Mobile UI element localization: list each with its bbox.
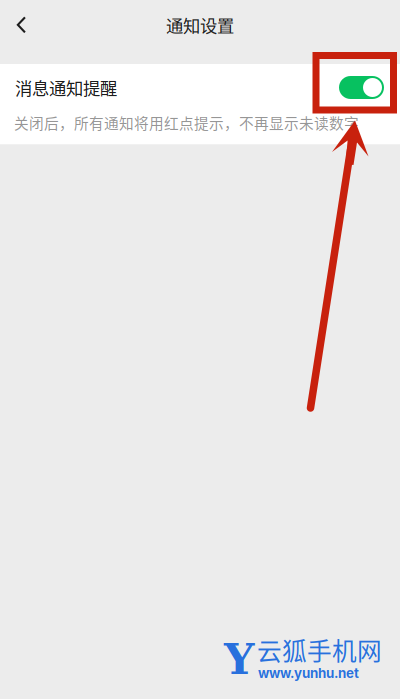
button[interactable]: 返回 [0,8,43,42]
staticText: 通知设置 [166,12,234,38]
staticText: 关闭后，所有通知将用红点提示，不再显示未读数字 [14,112,359,133]
button[interactable]: 消息通知提醒开关 [339,76,384,99]
staticText: 消息通知提醒 [15,75,117,100]
staticText: Y [224,634,254,684]
staticText: www.yunhu.net [258,665,359,681]
staticText: 云狐手机网 [257,632,382,668]
